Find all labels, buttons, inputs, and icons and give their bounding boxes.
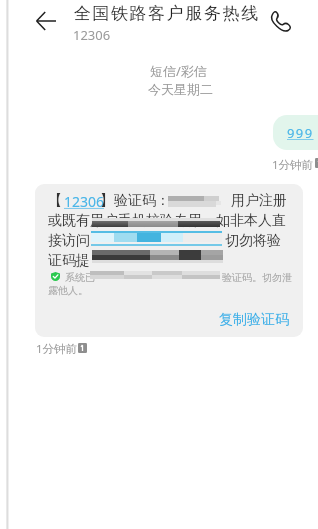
staticText: 短信/彩信 — [150, 62, 207, 80]
staticText: 接访问 — [48, 232, 90, 250]
staticText: 系统已 — [65, 271, 95, 284]
button[interactable]: 【 — [35, 184, 303, 337]
button[interactable]: 999 — [273, 115, 318, 150]
staticText: 今天星期二 — [148, 81, 213, 97]
staticText: 露他人。 — [48, 284, 88, 297]
staticText: 或既有用户手机校验专用，如非本人直 — [48, 212, 286, 230]
button[interactable]: 复制验证码 — [219, 311, 289, 329]
staticText: 12306 — [64, 192, 105, 211]
staticText: 复制验证码 — [219, 311, 289, 329]
other: SIM 1 — [78, 343, 87, 353]
staticText: 【 — [48, 192, 62, 210]
button[interactable]: Call — [265, 5, 297, 37]
button[interactable]: Back — [30, 5, 62, 37]
staticText: 999 — [287, 124, 314, 142]
staticText: 用户注册 — [231, 192, 287, 210]
staticText: 】验证码： — [100, 192, 170, 210]
staticText: 验证码。切勿泄 — [222, 271, 292, 284]
staticText: 1分钟前 — [272, 157, 314, 173]
staticText: 切勿将验 — [225, 232, 281, 250]
staticText: 全国铁路客户服务热线 — [73, 3, 259, 24]
staticText: 12306 — [73, 26, 111, 44]
other: SIM 1 — [315, 158, 318, 168]
staticText: 证码提 — [48, 252, 90, 270]
staticText: 1分钟前 — [36, 341, 78, 357]
